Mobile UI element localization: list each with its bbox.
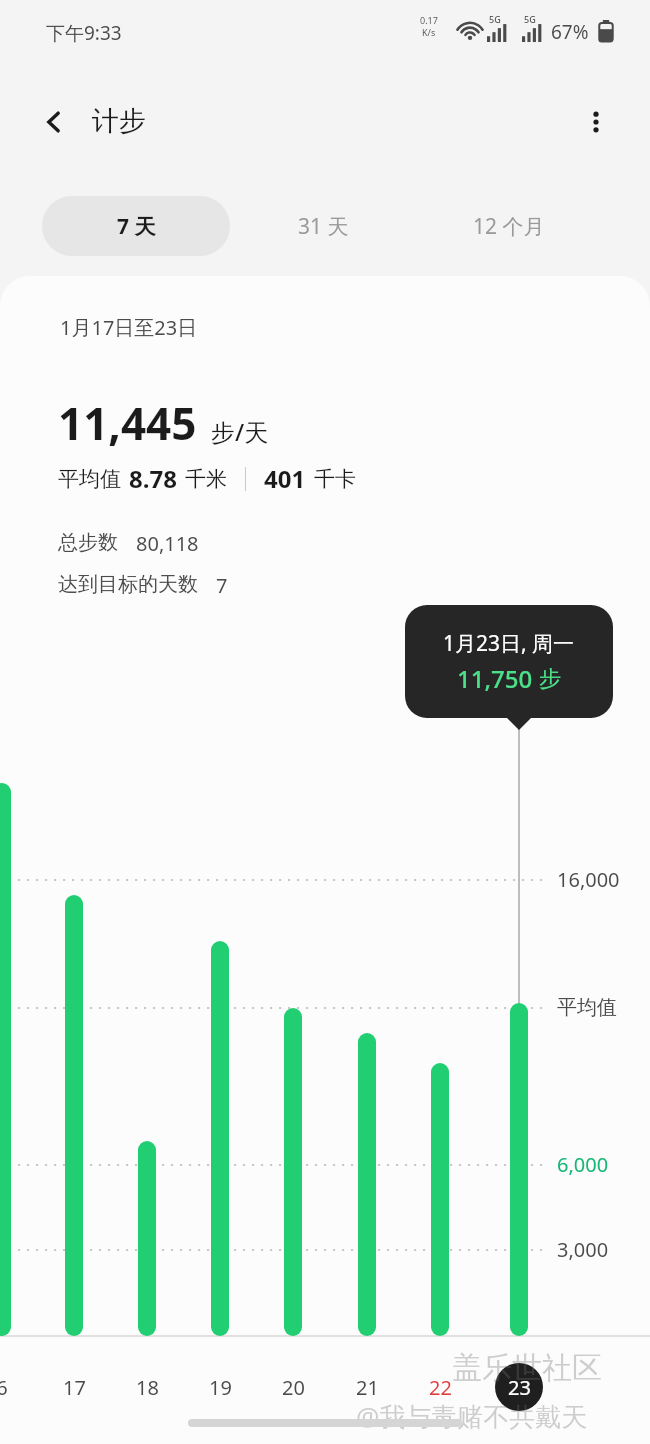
staticText: 达到目标的天数: [58, 572, 198, 597]
staticText: 3,000: [557, 1236, 609, 1263]
staticText: 1月23日, 周一: [443, 629, 575, 658]
staticText: 17: [63, 1374, 86, 1401]
staticText: 千米: [185, 466, 227, 492]
button[interactable]: Back: [26, 94, 82, 150]
staticText: 8.78: [129, 462, 177, 495]
staticText: @我与毒赌不共戴天: [356, 1398, 588, 1434]
staticText: 步: [539, 665, 561, 693]
staticText: 5G: [524, 13, 536, 25]
button[interactable]: 18: [121, 1361, 173, 1413]
button[interactable]: 6: [0, 1361, 28, 1413]
button[interactable]: 21: [341, 1361, 393, 1413]
staticText: 23: [508, 1374, 531, 1401]
button[interactable]: 12 个月: [416, 196, 602, 256]
staticText: 21: [356, 1374, 379, 1401]
staticText: 401: [264, 462, 306, 495]
staticText: 1月17日至23日: [60, 314, 198, 341]
staticText: K/s: [422, 26, 436, 38]
staticText: 7 天: [117, 212, 156, 241]
button[interactable]: 31 天: [230, 196, 416, 256]
button[interactable]: 20: [267, 1361, 319, 1413]
staticText: 19: [209, 1374, 232, 1401]
staticText: 盖乐世社区: [452, 1349, 602, 1387]
staticText: 计步: [92, 104, 146, 138]
staticText: 11,445: [58, 393, 197, 453]
button[interactable]: 23: [493, 1361, 545, 1413]
staticText: 11,750: [457, 662, 533, 695]
staticText: 67%: [551, 19, 589, 45]
staticText: 平均值: [557, 995, 617, 1020]
staticText: 20: [282, 1374, 305, 1401]
staticText: 6,000: [557, 1151, 609, 1178]
button[interactable]: 17: [48, 1361, 100, 1413]
staticText: 步/天: [211, 415, 269, 448]
staticText: 18: [136, 1374, 159, 1401]
staticText: 平均值: [58, 466, 121, 492]
staticText: 5G: [489, 13, 501, 25]
staticText: 22: [429, 1374, 452, 1401]
staticText: 12 个月: [473, 212, 545, 241]
staticText: 总步数: [58, 530, 118, 555]
staticText: 0.17: [420, 14, 438, 26]
button[interactable]: 1月23日, 周一: [405, 605, 613, 718]
staticText: 80,118: [136, 530, 199, 557]
staticText: 31 天: [298, 212, 349, 241]
staticText: 16,000: [557, 866, 620, 893]
staticText: 7: [216, 572, 228, 599]
staticText: 千卡: [314, 466, 356, 492]
staticText: 6: [0, 1374, 8, 1401]
staticText: 下午9:33: [46, 20, 122, 46]
button[interactable]: 7 天: [42, 196, 230, 256]
button[interactable]: More options: [568, 94, 624, 150]
button[interactable]: 22: [414, 1361, 466, 1413]
button[interactable]: 19: [194, 1361, 246, 1413]
